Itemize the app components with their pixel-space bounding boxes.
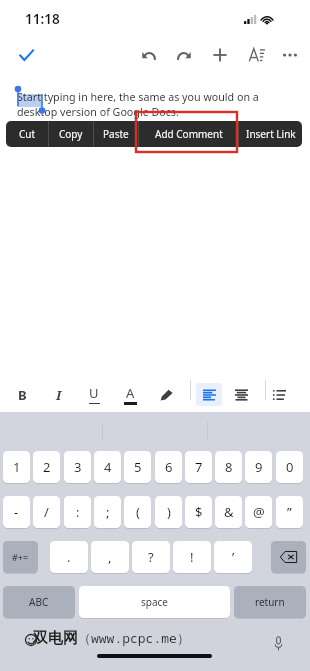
staticText: #+= [12, 551, 29, 563]
staticText: ” [287, 503, 292, 521]
button[interactable]: space [79, 586, 230, 618]
button[interactable]: & [215, 496, 242, 528]
staticText: ! [190, 548, 194, 566]
staticText: & [224, 503, 234, 521]
staticText: 3 [74, 458, 82, 476]
staticText: Insert Link [246, 127, 296, 141]
staticText: desktop version of Google Docs. [17, 105, 179, 120]
staticText: ? [148, 548, 154, 566]
staticText: Start typing in here, the same as you wo… [17, 90, 259, 105]
staticText: I [56, 386, 62, 404]
staticText: ’ [232, 548, 235, 566]
button[interactable]: $ [185, 496, 212, 528]
staticText: Copy [59, 127, 83, 141]
button[interactable]: Insert [204, 39, 236, 71]
button[interactable]: Underline [82, 383, 106, 407]
staticText: . [67, 548, 71, 566]
staticText: B [18, 386, 27, 404]
staticText: 5 [134, 458, 142, 476]
staticText: 4 [104, 458, 112, 476]
staticText: - [14, 503, 19, 521]
staticText: ABC [29, 595, 49, 609]
button[interactable]: 5 [124, 451, 151, 483]
button[interactable]: 6 [155, 451, 182, 483]
staticText: / [44, 503, 49, 521]
staticText: 双电网 [33, 629, 78, 648]
button[interactable]: Voice input [271, 634, 285, 652]
button[interactable]: Text color [118, 383, 142, 407]
button[interactable]: Bold [10, 383, 34, 407]
button[interactable]: Bulleted list [267, 383, 291, 407]
staticText: 0 [286, 458, 294, 476]
button[interactable]: , [91, 541, 129, 573]
button[interactable]: #+= [3, 541, 38, 573]
button[interactable]: Undo [133, 39, 165, 71]
button[interactable]: ; [94, 496, 121, 528]
button[interactable]: Done [13, 42, 39, 68]
button[interactable]: Align center [229, 383, 253, 407]
button[interactable]: Redo [168, 39, 200, 71]
staticText: 1 [13, 458, 21, 476]
staticText: 11:18 [25, 10, 60, 28]
staticText: space [141, 595, 168, 609]
button[interactable]: 1 [3, 451, 30, 483]
button[interactable]: return [234, 586, 306, 618]
staticText: U [89, 384, 99, 402]
staticText: , [108, 548, 112, 566]
button[interactable]: . [50, 541, 88, 573]
staticText: ; [106, 503, 110, 521]
button[interactable]: ! [173, 541, 211, 573]
staticText: 2 [43, 458, 51, 476]
button[interactable]: Copy [49, 121, 93, 147]
button[interactable]: More options [274, 39, 306, 71]
staticText: Paste [103, 127, 129, 141]
button[interactable]: ABC [3, 586, 75, 618]
button[interactable]: ? [132, 541, 170, 573]
button[interactable]: Align left [196, 383, 222, 406]
button[interactable]: ” [276, 496, 303, 528]
staticText: Add Comment [155, 127, 223, 141]
button[interactable]: Cut [6, 121, 48, 147]
staticText: $ [195, 503, 203, 521]
button[interactable]: Italic [47, 383, 71, 407]
button[interactable]: Text formatting [241, 39, 273, 71]
button[interactable]: 0 [276, 451, 303, 483]
staticText: A [126, 384, 135, 402]
button[interactable]: Add Comment [139, 121, 238, 147]
button[interactable]: Backspace [271, 541, 306, 573]
staticText: 8 [225, 458, 233, 476]
button[interactable]: 4 [94, 451, 121, 483]
staticText: Cut [19, 127, 36, 141]
staticText: 9 [255, 458, 263, 476]
button[interactable]: / [33, 496, 60, 528]
staticText: 7 [195, 458, 203, 476]
button[interactable]: 7 [185, 451, 212, 483]
button[interactable]: Paste [94, 121, 138, 147]
staticText: 6 [165, 458, 173, 476]
button[interactable]: - [3, 496, 30, 528]
button[interactable]: 2 [33, 451, 60, 483]
button[interactable]: 3 [64, 451, 91, 483]
button[interactable]: : [64, 496, 91, 528]
button[interactable]: ’ [214, 541, 252, 573]
button[interactable]: Insert Link [239, 121, 302, 147]
staticText: @ [253, 503, 265, 521]
staticText: : [76, 503, 80, 521]
button[interactable]: @ [245, 496, 272, 528]
button[interactable]: Highlight [154, 383, 178, 407]
staticText: ( [136, 503, 140, 521]
button[interactable]: ) [155, 496, 182, 528]
button[interactable]: 9 [245, 451, 272, 483]
staticText: return [255, 595, 285, 609]
staticText: ) [167, 503, 171, 521]
button[interactable]: 8 [215, 451, 242, 483]
button[interactable]: ( [124, 496, 151, 528]
staticText: （www.pcpc.me） [78, 629, 190, 647]
